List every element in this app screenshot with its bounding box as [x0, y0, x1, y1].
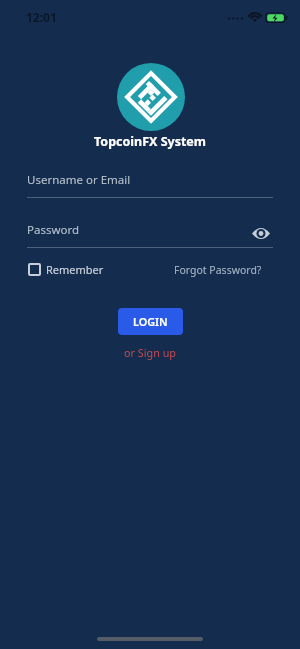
button[interactable]: Forgot Password?	[174, 263, 262, 277]
button[interactable]: or Sign up	[0, 345, 300, 360]
button[interactable]: LOGIN	[118, 308, 183, 335]
button[interactable]	[250, 225, 272, 243]
staticText: Username or Email	[27, 172, 131, 188]
staticText: TopcoinFX System	[0, 133, 300, 150]
staticText: Remember	[46, 262, 104, 277]
button[interactable]: Username or Email	[27, 170, 273, 198]
staticText: 12:01	[26, 9, 57, 25]
button[interactable]: Remember	[28, 262, 104, 277]
staticText: Password	[27, 222, 80, 238]
button[interactable]: Password	[27, 220, 273, 248]
staticText: LOGIN	[133, 314, 168, 329]
